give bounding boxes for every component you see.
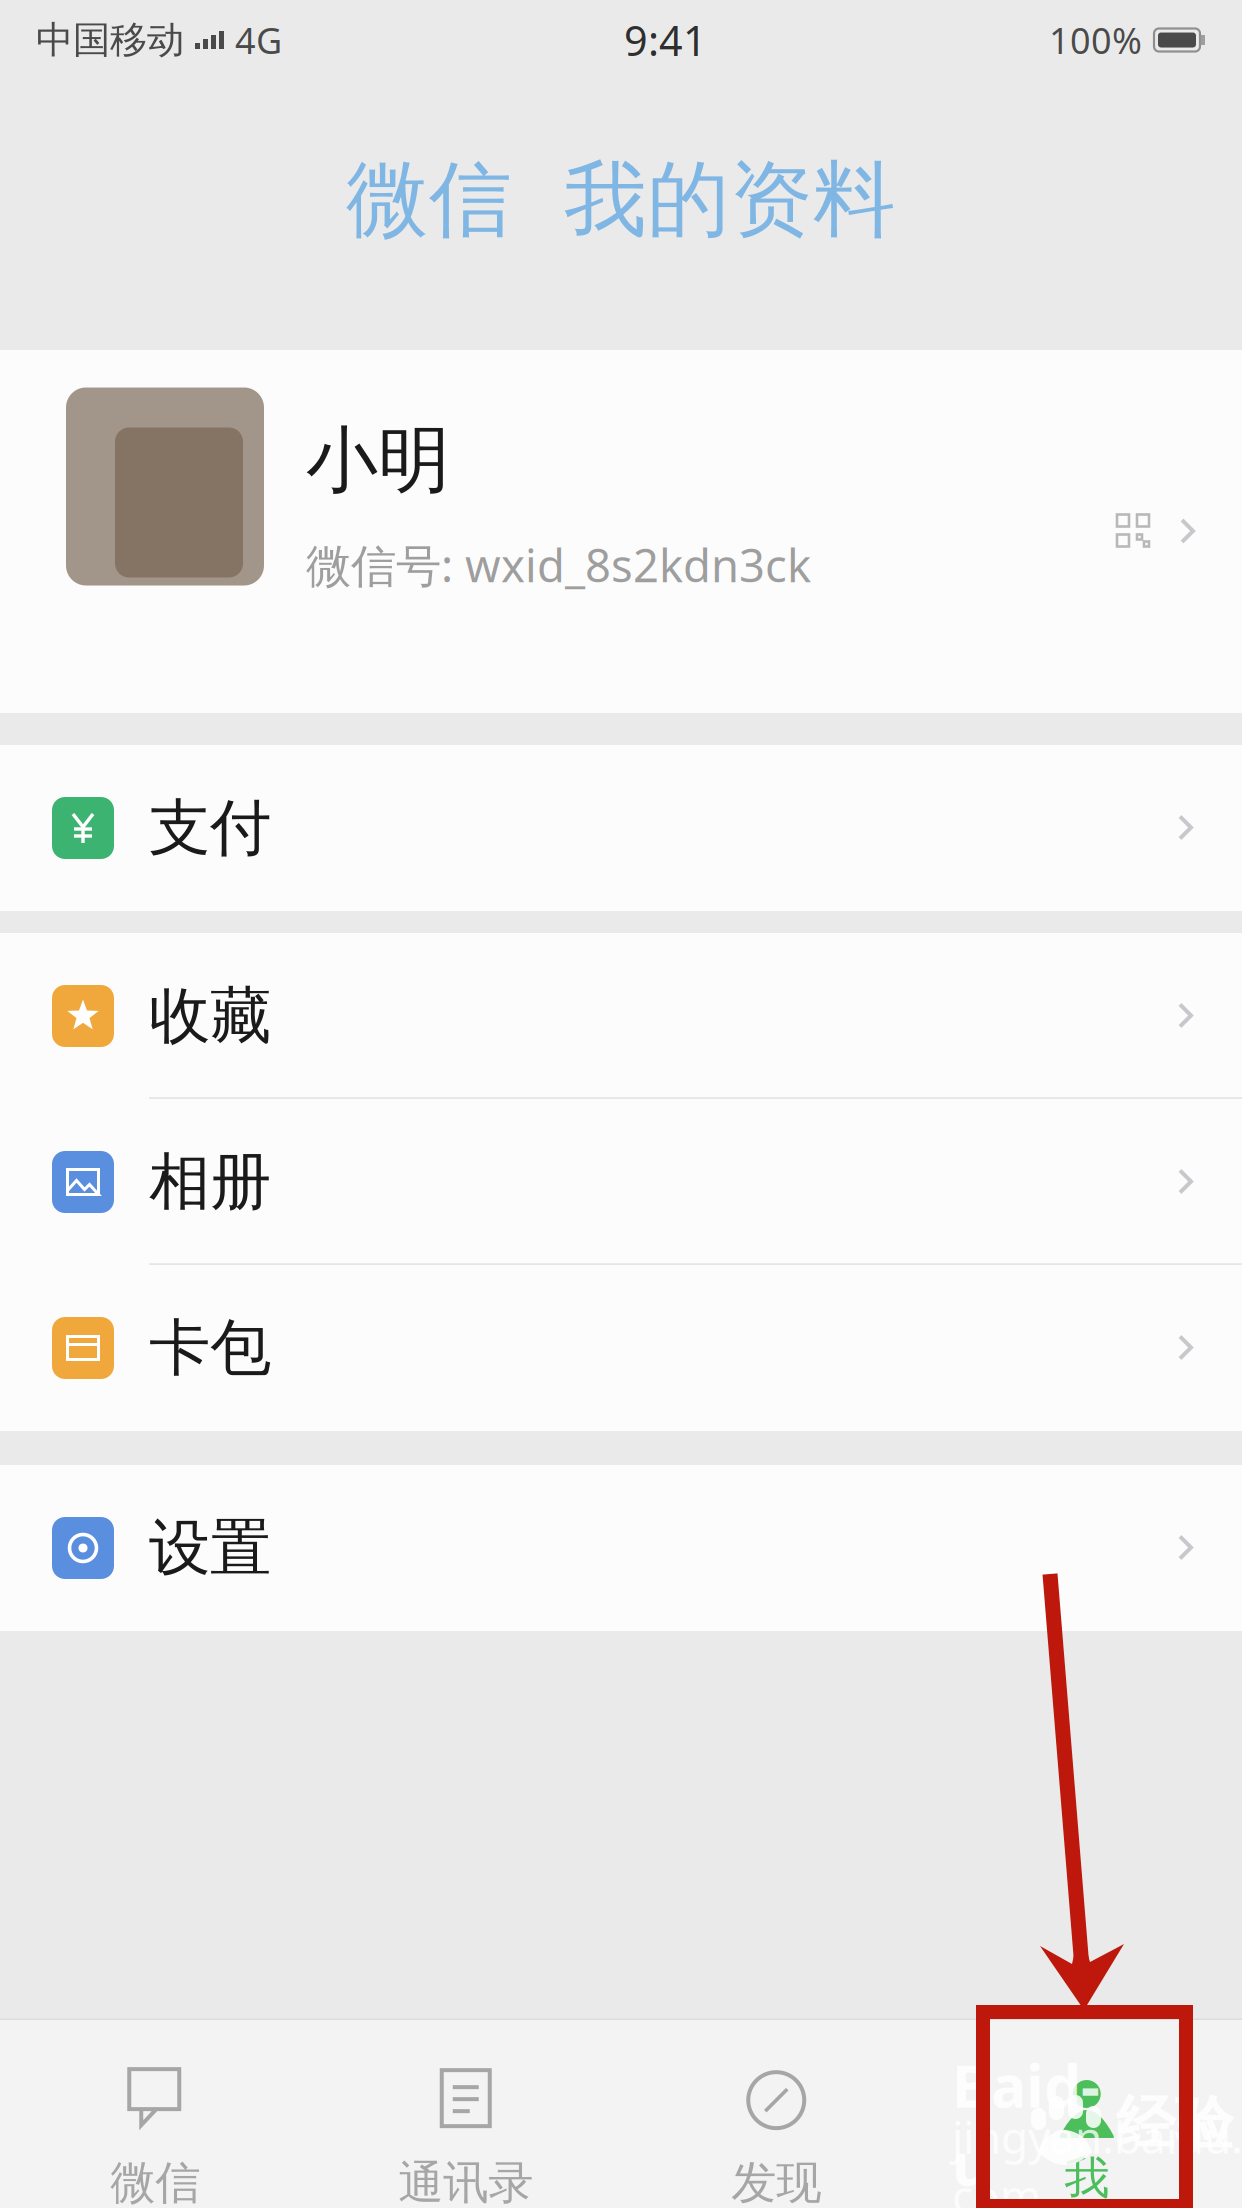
staticText: 小明 xyxy=(306,416,450,505)
staticText: 4G xyxy=(235,16,282,64)
staticText: 支付 xyxy=(149,790,271,866)
button[interactable]: 发现 xyxy=(621,2020,931,2208)
staticText: 通讯录 xyxy=(398,2155,533,2208)
button[interactable]: 设置 xyxy=(0,1465,1242,1631)
staticText: 卡包 xyxy=(149,1310,271,1386)
staticText: 微信号: wxid_8s2kdn3ck xyxy=(306,535,811,595)
button[interactable]: 通讯录 xyxy=(310,2020,621,2208)
staticText: 微信 xyxy=(110,2155,200,2208)
button[interactable]: 支付 xyxy=(0,745,1242,911)
button[interactable]: 微信 xyxy=(0,2020,310,2208)
staticText: 我的资料 xyxy=(564,149,896,251)
staticText: jingyan.baidu.com xyxy=(952,2108,1242,2208)
staticText: 收藏 xyxy=(149,978,271,1054)
button[interactable]: 小明 xyxy=(0,350,1242,713)
button[interactable]: 我 xyxy=(931,2020,1242,2208)
staticText: 经验 xyxy=(1116,2088,1234,2160)
staticText: 发现 xyxy=(731,2155,821,2208)
staticText: 我 xyxy=(1064,2150,1109,2206)
button[interactable]: 相册 xyxy=(0,1099,1242,1265)
button[interactable]: 卡包 xyxy=(0,1265,1242,1431)
staticText: 设置 xyxy=(149,1510,271,1586)
staticText: 100% xyxy=(1049,16,1142,64)
staticText: Baidu xyxy=(952,2046,1100,2202)
staticText: 中国移动 xyxy=(36,17,184,63)
button[interactable]: 收藏 xyxy=(0,933,1242,1099)
staticText: 9:41 xyxy=(624,13,707,67)
staticText: 微信 xyxy=(346,149,512,251)
staticText: 相册 xyxy=(149,1144,271,1220)
